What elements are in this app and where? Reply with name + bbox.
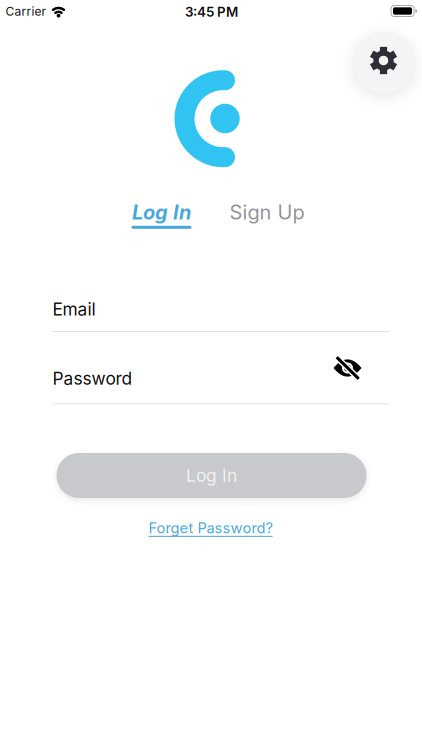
staticText: Sign Up [229, 200, 304, 224]
button[interactable]: Log In [56, 453, 366, 498]
button[interactable]: Forget Password? [148, 519, 272, 537]
staticText: Email [52, 299, 95, 319]
staticText: Carrier [5, 4, 46, 18]
staticText: Password [52, 368, 132, 389]
button[interactable]: Email [52, 299, 389, 332]
button[interactable]: Settings [353, 31, 415, 93]
button[interactable]: Password [52, 368, 389, 404]
staticText: Log In [132, 200, 191, 224]
staticText: Log In [186, 465, 237, 486]
staticText: 3:45 PM [185, 4, 238, 20]
button[interactable]: Show password [329, 350, 365, 386]
button[interactable]: Sign Up [229, 200, 304, 224]
staticText: Forget Password? [148, 519, 272, 537]
button[interactable]: Log In [132, 200, 191, 224]
